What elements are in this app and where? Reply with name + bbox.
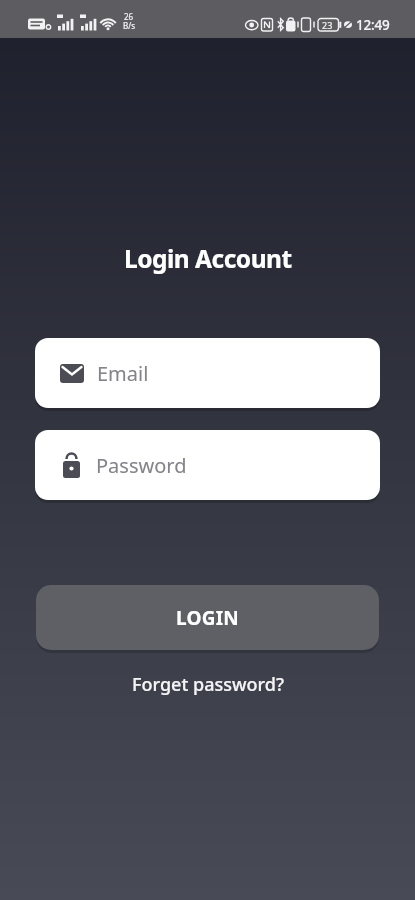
staticText: Email	[97, 360, 149, 387]
staticText: LOGIN	[176, 605, 239, 631]
staticText: 12:49	[356, 16, 390, 34]
staticText: 23	[322, 19, 333, 31]
staticText: Password	[96, 452, 187, 479]
staticText: Forget password?	[132, 672, 284, 696]
staticText: Login Account	[124, 242, 292, 275]
staticText: B/s	[123, 20, 136, 31]
staticText: 26	[124, 11, 134, 22]
